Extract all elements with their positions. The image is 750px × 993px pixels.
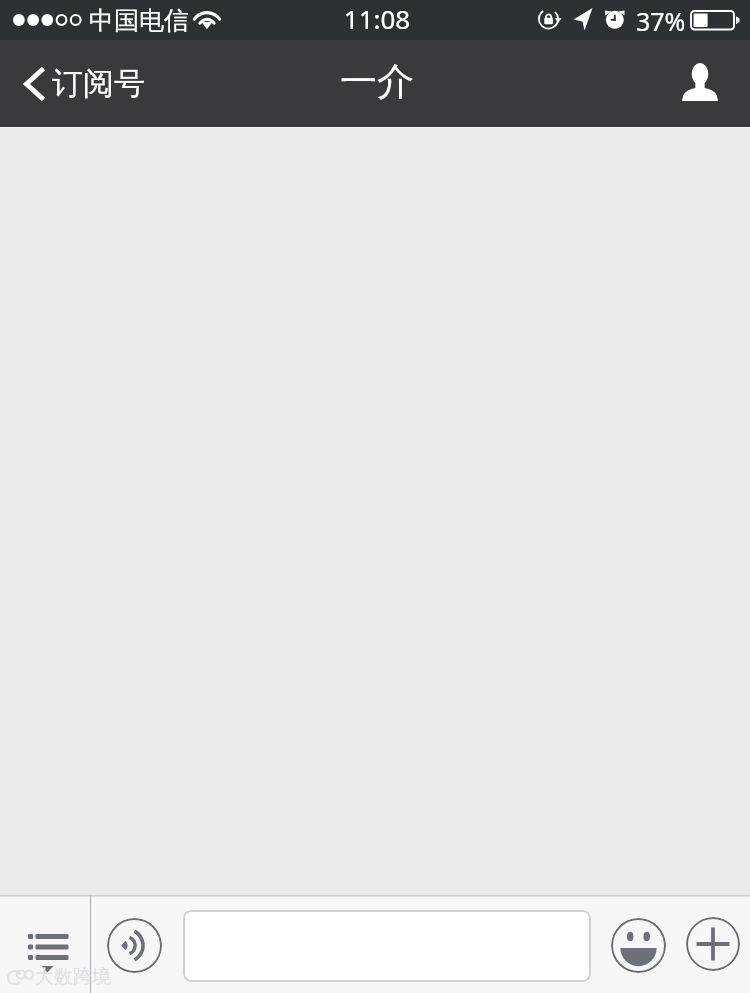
staticText: 订阅号: [52, 64, 145, 103]
button[interactable]: Emoji: [611, 918, 666, 973]
staticText: 11:08: [2, 1, 750, 36]
button[interactable]: 订阅号: [0, 56, 157, 111]
staticText: 一介: [340, 58, 414, 105]
staticText: 37%: [636, 4, 686, 38]
button[interactable]: Menu: [0, 895, 90, 993]
staticText: 中国电信: [89, 5, 189, 36]
button[interactable]: Contact profile: [666, 55, 750, 113]
button[interactable]: More: [686, 917, 740, 971]
button[interactable]: Message input: [183, 910, 591, 982]
button[interactable]: Voice input: [107, 918, 162, 973]
staticText: 大数跨境: [35, 965, 111, 989]
